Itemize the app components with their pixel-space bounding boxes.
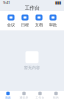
button[interactable]: 我的 xyxy=(48,92,64,99)
button[interactable]: 文档 xyxy=(32,14,46,27)
staticText: 审批 xyxy=(49,22,57,27)
button[interactable]: 通讯录 xyxy=(16,92,32,99)
staticText: 会议 xyxy=(7,22,15,27)
staticText: 消息 xyxy=(5,96,11,99)
staticText: 文档 xyxy=(35,22,43,27)
staticText: 通讯录 xyxy=(19,96,28,99)
staticText: 工作台 xyxy=(35,96,44,99)
button[interactable]: 消息 xyxy=(0,92,16,99)
staticText: 日程 xyxy=(21,22,29,27)
staticText: ▮▮▮ xyxy=(55,0,61,5)
staticText: 我的 xyxy=(53,96,59,99)
staticText: 工作台 xyxy=(24,5,39,11)
button[interactable]: 会议 xyxy=(4,14,18,27)
staticText: 暂无内容 xyxy=(24,65,40,70)
button[interactable]: 工作台 xyxy=(32,92,48,99)
button[interactable]: 日程 xyxy=(18,14,32,27)
staticText: 9:41 xyxy=(3,0,10,5)
button[interactable]: 审批 xyxy=(46,14,60,27)
